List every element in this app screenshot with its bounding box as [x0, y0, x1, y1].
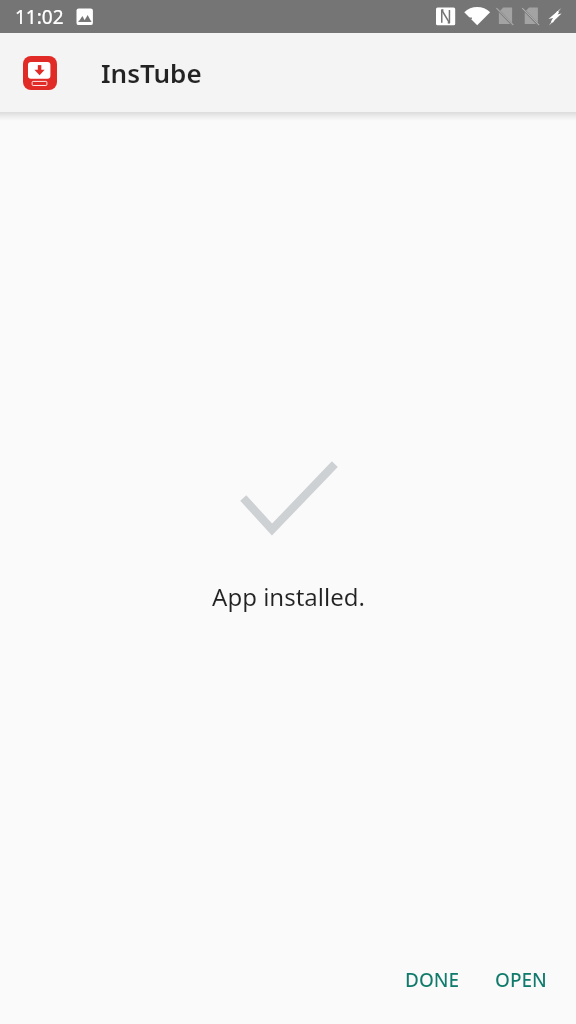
- staticText: DONE: [405, 967, 460, 993]
- staticText: App installed.: [212, 580, 365, 613]
- staticText: 11:02: [15, 4, 64, 30]
- other: Installed: [0, 0, 576, 1024]
- button[interactable]: OPEN: [481, 955, 561, 1005]
- other: InsTube app icon: [23, 56, 57, 90]
- button[interactable]: DONE: [391, 955, 474, 1005]
- staticText: InsTube: [101, 55, 202, 90]
- button[interactable]: InsTube app icon: [0, 33, 576, 112]
- staticText: OPEN: [495, 967, 547, 993]
